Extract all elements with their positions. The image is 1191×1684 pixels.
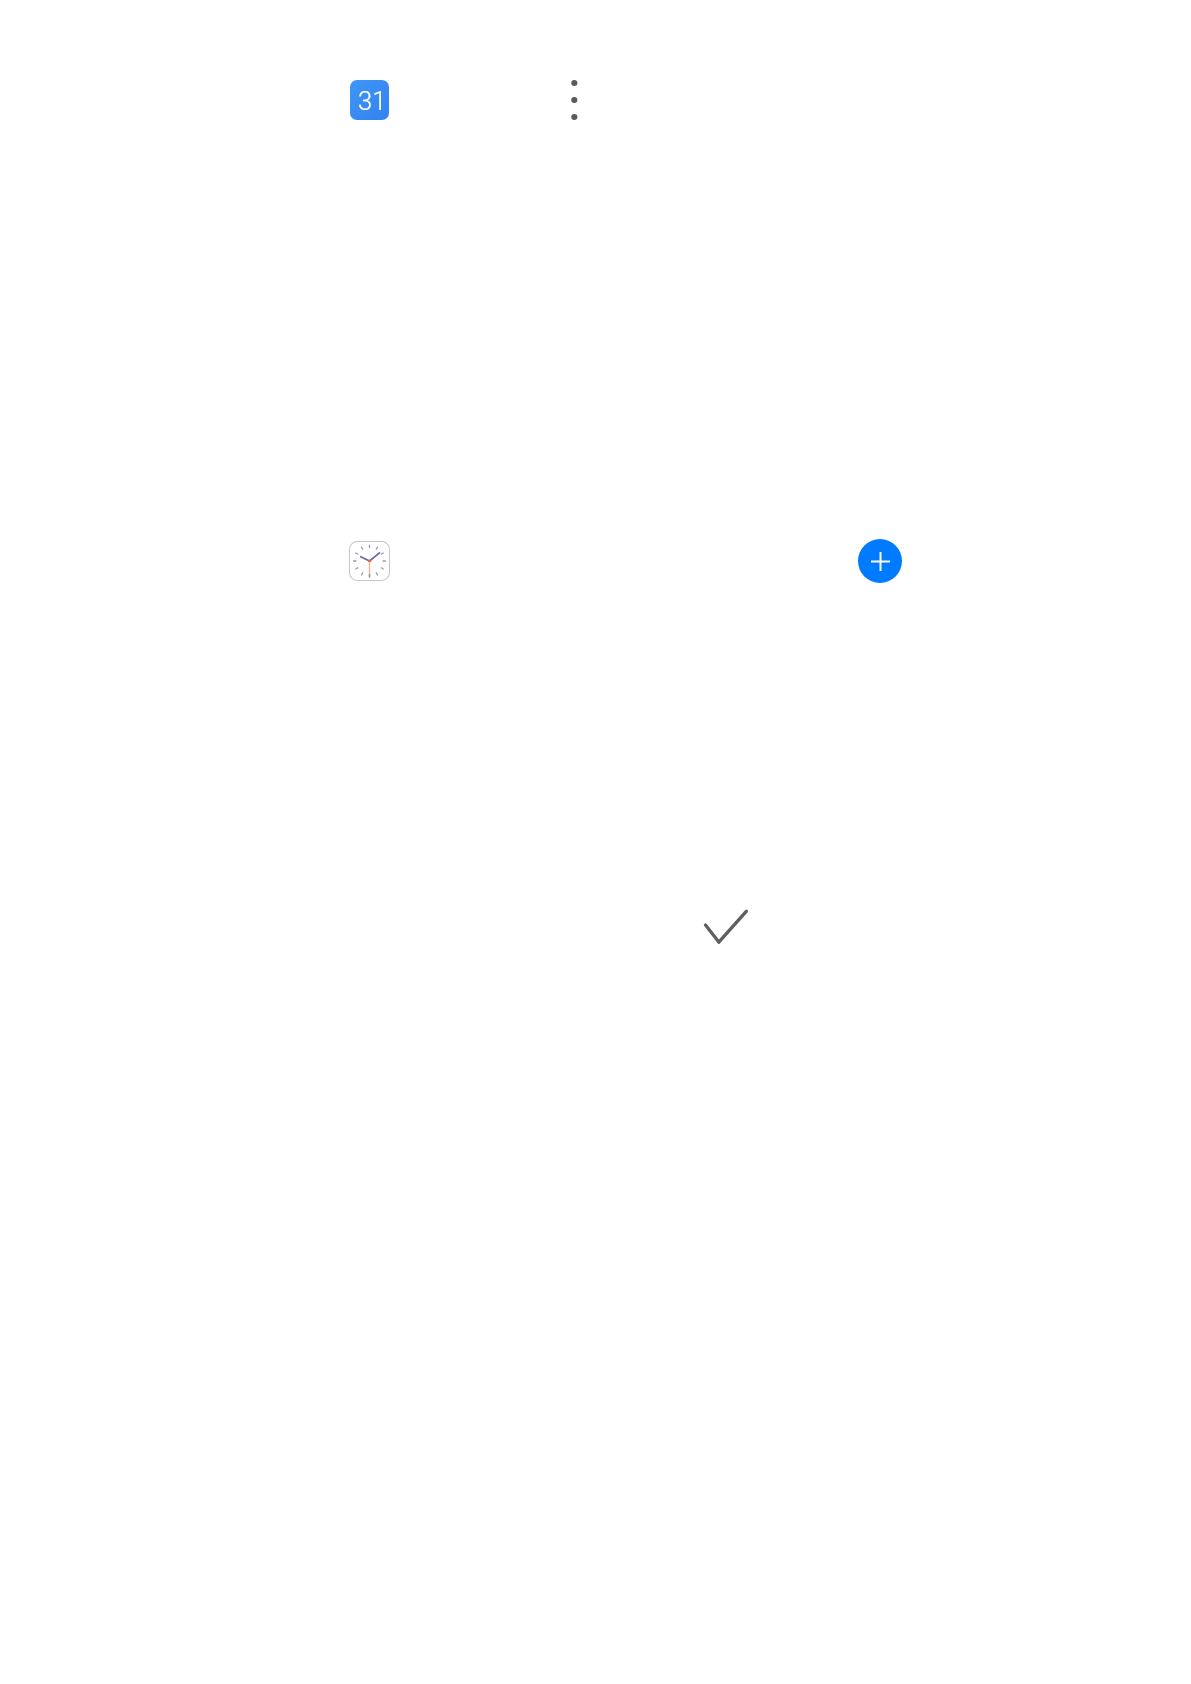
button[interactable]: More options <box>550 76 598 124</box>
button[interactable]: Add <box>858 539 902 583</box>
button[interactable]: Clock <box>349 541 390 581</box>
staticText: 31 <box>358 86 387 116</box>
button[interactable]: Calendar <box>350 80 389 120</box>
button[interactable]: Done <box>700 905 752 957</box>
